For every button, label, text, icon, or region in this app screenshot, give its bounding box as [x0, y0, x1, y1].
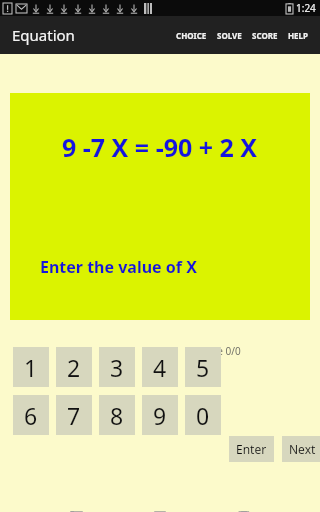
staticText: Score 0/0 — [197, 344, 241, 358]
staticText: 4 — [153, 352, 167, 383]
button[interactable]: SOLVE — [212, 24, 247, 47]
staticText: SOLVE — [217, 30, 242, 41]
staticText: CHOICE — [176, 30, 207, 41]
button[interactable]: 9 — [142, 395, 178, 435]
button[interactable]: 5 — [185, 347, 221, 387]
staticText: 3 — [110, 352, 124, 383]
button[interactable]: HELP — [283, 24, 314, 47]
staticText: 1 — [24, 352, 38, 383]
staticText: 5 — [196, 352, 210, 383]
staticText: 2 — [67, 352, 81, 383]
staticText: 9 -7 X = -90 + 2 X — [62, 130, 258, 164]
staticText: 0 — [196, 400, 210, 431]
button[interactable]: 1 — [13, 347, 49, 387]
staticText: Next — [289, 441, 316, 457]
staticText: 6 — [24, 400, 38, 431]
button[interactable]: Next — [282, 436, 320, 462]
staticText: 1:24 — [296, 1, 316, 15]
staticText: HELP — [288, 30, 309, 41]
button[interactable]: Enter — [229, 436, 274, 462]
staticText: 7 — [67, 400, 81, 431]
button[interactable]: 0 — [185, 395, 221, 435]
button[interactable]: 8 — [99, 395, 135, 435]
button[interactable]: 2 — [56, 347, 92, 387]
button[interactable]: 4 — [142, 347, 178, 387]
staticText: 9 — [153, 400, 167, 431]
staticText: 8 — [110, 400, 124, 431]
button[interactable]: CHOICE — [171, 24, 212, 47]
staticText: Enter the value of X — [40, 256, 197, 278]
button[interactable]: 7 — [56, 395, 92, 435]
staticText: Enter — [236, 441, 267, 457]
button[interactable]: SCORE — [247, 24, 283, 47]
button[interactable]: 6 — [13, 395, 49, 435]
button[interactable]: 3 — [99, 347, 135, 387]
staticText: Equation — [12, 25, 75, 45]
staticText: SCORE — [252, 30, 278, 41]
